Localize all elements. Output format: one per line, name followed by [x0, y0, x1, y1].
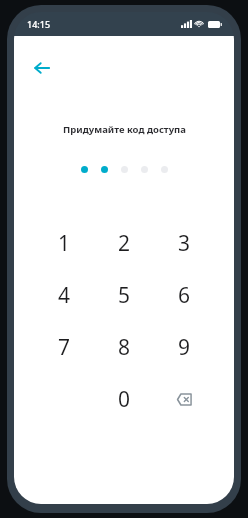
staticText: 6	[178, 281, 191, 310]
staticText: 4	[58, 281, 71, 310]
button[interactable]: 2	[94, 217, 154, 269]
staticText: 0	[118, 385, 131, 414]
button[interactable]: 6	[154, 269, 214, 321]
staticText: 5	[118, 281, 131, 310]
staticText: 9	[178, 333, 191, 362]
button[interactable]: 5	[94, 269, 154, 321]
button[interactable]: 9	[154, 321, 214, 373]
button[interactable]: 8	[94, 321, 154, 373]
button[interactable]: 3	[154, 217, 214, 269]
button[interactable]: 1	[34, 217, 94, 269]
staticText: Придумайте код доступа	[63, 123, 186, 136]
staticText: 2	[118, 229, 131, 258]
button[interactable]: 7	[34, 321, 94, 373]
button[interactable]: 4	[34, 269, 94, 321]
button[interactable]: 0	[94, 373, 154, 425]
staticText: 1	[58, 229, 71, 258]
staticText: 14:15	[27, 18, 51, 30]
button[interactable]: Back	[24, 50, 60, 86]
staticText: 8	[118, 333, 131, 362]
button[interactable]: Backspace	[154, 373, 214, 425]
staticText: 7	[58, 333, 71, 362]
staticText: 3	[178, 229, 191, 258]
